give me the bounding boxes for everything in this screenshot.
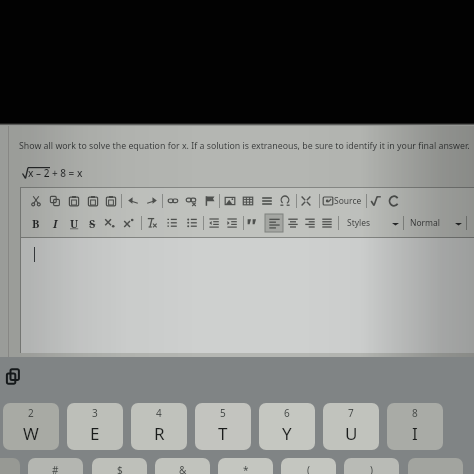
button[interactable]: B <box>27 214 45 232</box>
staticText: # <box>52 463 59 474</box>
button[interactable]: Maximize <box>297 192 315 210</box>
button[interactable]: Special character <box>276 192 294 210</box>
button[interactable]: ) <box>344 458 399 474</box>
button[interactable]: Horizontal line <box>258 192 276 210</box>
staticText: Source <box>334 195 362 207</box>
staticText: Normal <box>410 217 441 229</box>
button[interactable]: $ <box>92 458 147 474</box>
staticText: W <box>23 422 39 445</box>
button[interactable]: Math formula <box>367 192 385 210</box>
button[interactable]: 4 <box>131 403 187 450</box>
button[interactable]: Paste <box>65 192 83 210</box>
button[interactable]: 8 <box>387 403 443 450</box>
staticText: ( <box>307 463 310 474</box>
button[interactable]: Bulleted list <box>183 214 201 232</box>
button[interactable] <box>0 458 20 474</box>
button[interactable]: Chemistry formula <box>385 192 403 210</box>
staticText: U <box>70 216 79 231</box>
staticText: Styles <box>347 217 371 229</box>
button[interactable]: Subscript <box>101 214 119 232</box>
staticText: $ <box>117 463 123 474</box>
staticText: Y <box>282 422 292 445</box>
button[interactable]: Clipboard <box>5 368 22 385</box>
button[interactable]: 2 <box>3 403 59 450</box>
button[interactable]: ( <box>281 458 336 474</box>
staticText: 5 <box>220 406 226 420</box>
staticText: 6 <box>284 406 290 420</box>
button[interactable]: 6 <box>259 403 315 450</box>
button[interactable]: U <box>65 214 83 232</box>
staticText: Show all work to solve the equation for … <box>19 140 470 152</box>
button[interactable]: Superscript <box>120 214 138 232</box>
button[interactable]: Image <box>221 192 239 210</box>
button[interactable]: * <box>218 458 273 474</box>
staticText: I <box>53 216 58 231</box>
button[interactable]: Normal <box>410 214 466 232</box>
button[interactable]: Table <box>239 192 257 210</box>
button[interactable]: Numbered list <box>163 214 181 232</box>
staticText: 7 <box>348 406 354 420</box>
button[interactable]: Copy <box>46 192 64 210</box>
button[interactable]: Redo <box>143 192 161 210</box>
staticText: * <box>243 463 249 474</box>
button[interactable] <box>408 458 463 474</box>
staticText: B <box>32 216 40 231</box>
button[interactable]: Paste from Word <box>102 192 120 210</box>
button[interactable]: Justify <box>318 214 336 232</box>
button[interactable]: S <box>83 214 101 232</box>
staticText: 3 <box>92 406 98 420</box>
button[interactable]: Undo <box>124 192 142 210</box>
button[interactable]: Align left <box>265 214 283 232</box>
staticText: T <box>218 422 228 445</box>
button[interactable]: Align right <box>301 214 319 232</box>
button[interactable]: I <box>46 214 64 232</box>
button[interactable]: # <box>28 458 83 474</box>
staticText: 4 <box>156 406 162 420</box>
button[interactable]: Cut <box>27 192 45 210</box>
button[interactable]: Unlink <box>182 192 200 210</box>
button[interactable]: Block quote <box>243 214 261 232</box>
staticText: S <box>89 216 96 231</box>
staticText: 2 <box>28 406 34 420</box>
staticText: I <box>412 422 418 445</box>
button[interactable]: Paste as plain text <box>84 192 102 210</box>
staticText: & <box>179 463 187 474</box>
button[interactable]: Source <box>334 192 362 210</box>
staticText: x – 2 + 8 = x <box>28 166 83 180</box>
button[interactable]: Anchor <box>201 192 219 210</box>
button[interactable]: Decrease indent <box>205 214 223 232</box>
staticText: U <box>345 422 358 445</box>
button[interactable]: Remove format <box>143 214 161 232</box>
staticText: 8 <box>412 406 418 420</box>
button[interactable]: & <box>155 458 210 474</box>
staticText: E <box>90 422 100 445</box>
button[interactable]: Link <box>164 192 182 210</box>
button[interactable]: Styles <box>347 214 403 232</box>
button[interactable]: Increase indent <box>223 214 241 232</box>
staticText: ) <box>370 463 373 474</box>
button[interactable]: Source <box>319 192 337 210</box>
staticText: R <box>154 422 165 445</box>
button[interactable]: Align center <box>284 214 302 232</box>
button[interactable]: 3 <box>67 403 123 450</box>
button[interactable]: 7 <box>323 403 379 450</box>
button[interactable]: 5 <box>195 403 251 450</box>
